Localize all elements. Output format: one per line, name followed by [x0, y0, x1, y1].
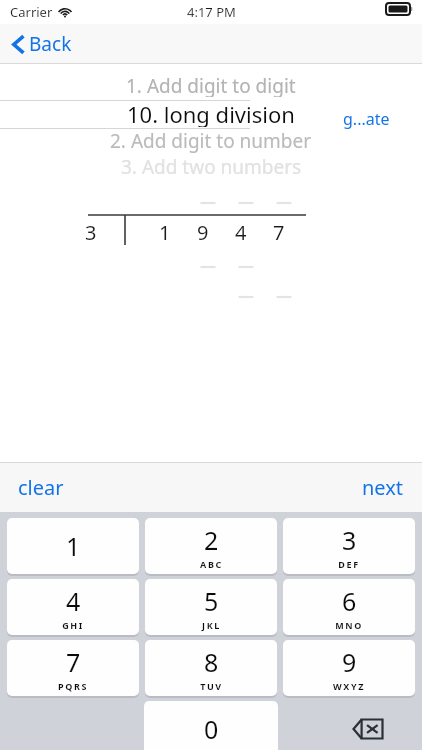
staticText: 3. Add two numbers: [121, 154, 302, 178]
staticText: next: [362, 474, 404, 501]
staticText: 2: [204, 523, 219, 557]
staticText: GHI: [62, 619, 84, 631]
staticText: 6: [342, 584, 357, 618]
staticText: 4:17 PM: [187, 3, 236, 21]
button[interactable]: 1: [7, 518, 139, 574]
button[interactable]: Back: [8, 27, 76, 61]
staticText: 8: [204, 645, 219, 679]
staticText: Back: [29, 31, 72, 57]
button[interactable]: 4: [7, 579, 139, 635]
button[interactable]: g...ate: [337, 104, 396, 134]
staticText: 7: [273, 219, 285, 246]
staticText: ABC: [200, 558, 223, 570]
staticText: clear: [18, 474, 64, 501]
staticText: MNO: [335, 619, 363, 631]
button[interactable]: 6: [283, 579, 415, 635]
staticText: JKL: [202, 619, 221, 631]
button[interactable]: 3: [283, 518, 415, 574]
button[interactable]: 10. long division: [86, 99, 336, 127]
staticText: 1: [159, 219, 171, 246]
staticText: PQRS: [58, 680, 88, 692]
staticText: 3: [342, 523, 357, 557]
button[interactable]: 7: [7, 640, 139, 696]
button[interactable]: 0: [144, 701, 278, 750]
button[interactable]: clear: [10, 468, 72, 507]
staticText: g...ate: [343, 108, 390, 130]
staticText: DEF: [338, 558, 360, 570]
staticText: 9: [197, 219, 209, 246]
staticText: 5: [204, 584, 219, 618]
button[interactable]: 9: [283, 640, 415, 696]
staticText: Carrier: [10, 3, 53, 21]
button[interactable]: 5: [145, 579, 277, 635]
staticText: 4: [66, 584, 81, 618]
staticText: 3: [85, 219, 97, 246]
staticText: WXYZ: [333, 680, 365, 692]
button[interactable]: next: [354, 468, 412, 507]
staticText: 2. Add digit to number: [110, 128, 312, 154]
staticText: TUV: [200, 680, 223, 692]
staticText: 7: [66, 645, 81, 679]
button[interactable]: Delete: [345, 713, 391, 745]
staticText: 4: [235, 219, 247, 246]
button[interactable]: 8: [145, 640, 277, 696]
staticText: 9: [342, 645, 357, 679]
staticText: 1. Add digit to digit: [126, 73, 296, 97]
staticText: 0: [204, 712, 219, 746]
button[interactable]: 2: [145, 518, 277, 574]
staticText: 1: [66, 529, 81, 563]
staticText: 10. long division: [127, 99, 295, 127]
